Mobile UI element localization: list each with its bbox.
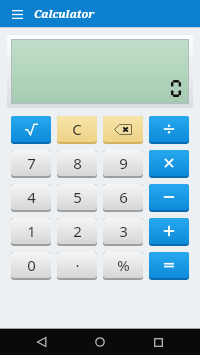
button[interactable]: Divide [149, 116, 189, 142]
button[interactable]: Home [71, 329, 129, 355]
button[interactable]: Menu [6, 3, 28, 25]
button[interactable]: Backspace [103, 116, 143, 142]
staticText: Calculator [34, 6, 95, 21]
staticText: 2 [73, 221, 82, 241]
button[interactable]: 0 [11, 252, 51, 278]
staticText: % [117, 255, 130, 275]
button[interactable]: 7 [11, 150, 51, 176]
button[interactable]: Minus [149, 184, 189, 210]
button[interactable]: 8 [57, 150, 97, 176]
staticText: 5 [73, 187, 82, 207]
button[interactable]: 1 [11, 218, 51, 244]
staticText: 6 [119, 187, 128, 207]
button[interactable]: 2 [57, 218, 97, 244]
button[interactable]: 6 [103, 184, 143, 210]
button[interactable]: · [57, 252, 97, 278]
button[interactable]: Square root [11, 116, 51, 142]
button[interactable]: 5 [57, 184, 97, 210]
button[interactable]: 3 [103, 218, 143, 244]
staticText: 7 [27, 153, 36, 173]
staticText: 1 [27, 221, 36, 241]
button[interactable]: Plus [149, 218, 189, 244]
button[interactable]: 9 [103, 150, 143, 176]
button[interactable]: Equals [149, 252, 189, 278]
staticText: 0 [27, 255, 36, 275]
button[interactable]: % [103, 252, 143, 278]
staticText: 8 [73, 153, 82, 173]
button[interactable]: 4 [11, 184, 51, 210]
button[interactable]: Back [13, 329, 71, 355]
staticText: 3 [119, 221, 128, 241]
staticText: C [72, 119, 82, 139]
staticText: 9 [119, 153, 128, 173]
staticText: · [75, 255, 80, 275]
button[interactable]: Multiply [149, 150, 189, 176]
button[interactable]: Recents [129, 329, 187, 355]
button[interactable]: C [57, 116, 97, 142]
staticText: 4 [27, 187, 36, 207]
